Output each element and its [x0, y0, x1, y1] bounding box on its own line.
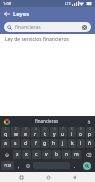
button[interactable]: Search — [83, 162, 91, 170]
staticText: m — [74, 151, 79, 158]
button[interactable]: 8 — [68, 127, 76, 137]
button[interactable]: Back — [68, 172, 80, 182]
staticText: r — [34, 131, 37, 137]
button[interactable]: g — [41, 139, 49, 148]
staticText: . — [74, 163, 76, 169]
staticText: w — [14, 131, 18, 137]
staticText: 8 — [71, 127, 73, 131]
staticText: financieras — [35, 118, 59, 124]
staticText: ñ — [88, 140, 92, 147]
button[interactable]: , — [15, 161, 23, 170]
button[interactable]: n — [62, 150, 71, 159]
staticText: t — [44, 131, 46, 137]
staticText: 9 — [80, 127, 82, 131]
staticText: z — [16, 151, 19, 158]
staticText: 1 — [5, 127, 7, 131]
button[interactable]: 1 — [1, 127, 10, 137]
staticText: v — [45, 151, 48, 158]
button[interactable]: x — [22, 150, 31, 159]
button[interactable]: Recents — [15, 172, 27, 182]
button[interactable]: Backspace — [82, 150, 94, 159]
button[interactable]: k — [68, 139, 76, 148]
staticText: Ley de servicios financieros — [5, 36, 69, 43]
staticText: 0 — [89, 127, 91, 131]
staticText: u — [61, 131, 65, 137]
staticText: o — [79, 131, 83, 137]
button[interactable]: Ley de servicios financieros — [0, 34, 95, 45]
staticText: Leyes — [13, 10, 30, 18]
staticText: 5 — [44, 127, 46, 131]
staticText: y — [53, 131, 56, 137]
staticText: i — [71, 131, 73, 137]
button[interactable]: Voice input — [85, 118, 92, 125]
staticText: ?123 — [4, 163, 12, 168]
button[interactable]: b — [52, 150, 61, 159]
button[interactable]: Home — [42, 172, 54, 182]
button[interactable]: ñ — [86, 139, 94, 148]
staticText: k — [71, 140, 74, 147]
button[interactable]: z — [13, 150, 21, 159]
button[interactable]: v — [42, 150, 51, 159]
button[interactable]: 5 — [41, 127, 49, 137]
staticText: 1:08 — [3, 1, 11, 6]
staticText: d — [24, 140, 28, 147]
button[interactable]: 3 — [21, 127, 30, 137]
staticText: a — [4, 140, 7, 147]
staticText: , — [18, 163, 20, 169]
button[interactable]: 9 — [77, 127, 85, 137]
staticText: h — [52, 140, 56, 147]
button[interactable]: Shift — [1, 150, 12, 159]
staticText: s — [14, 140, 17, 147]
button[interactable]: 6 — [50, 127, 58, 137]
button[interactable]: 4 — [31, 127, 40, 137]
staticText: g — [43, 140, 47, 147]
staticText: financieras — [15, 24, 81, 31]
button[interactable]: l — [77, 139, 85, 148]
staticText: l — [80, 140, 82, 147]
button[interactable]: Clear — [81, 24, 88, 31]
button[interactable]: Google — [3, 118, 10, 125]
button[interactable]: f — [31, 139, 40, 148]
button[interactable]: h — [50, 139, 58, 148]
button[interactable]: 0 — [86, 127, 94, 137]
button[interactable]: 7 — [59, 127, 67, 137]
staticText: 4 — [35, 127, 37, 131]
staticText: LTE — [65, 1, 71, 6]
staticText: 7 — [62, 127, 64, 131]
staticText: j — [62, 140, 64, 147]
button[interactable]: d — [21, 139, 30, 148]
staticText: 6 — [54, 127, 56, 131]
button[interactable]: 2 — [11, 127, 20, 137]
button[interactable]: m — [72, 150, 81, 159]
button[interactable]: ?123 — [1, 161, 14, 170]
button[interactable]: c — [32, 150, 41, 159]
button[interactable]: Back — [0, 7, 13, 20]
staticText: c — [35, 151, 38, 158]
button[interactable]: Emoji — [24, 161, 32, 170]
button[interactable]: s — [11, 139, 20, 148]
staticText: n — [65, 151, 69, 158]
staticText: e — [24, 131, 27, 137]
staticText: 3 — [25, 127, 27, 131]
staticText: x — [25, 151, 28, 158]
button[interactable]: . — [71, 161, 79, 170]
staticText: q — [4, 131, 8, 137]
button[interactable]: j — [59, 139, 67, 148]
staticText: 2 — [15, 127, 17, 131]
staticText: p — [88, 131, 92, 137]
button[interactable]: financieras — [4, 22, 91, 32]
staticText: f — [35, 140, 37, 147]
staticText: b — [55, 151, 59, 158]
button[interactable]: a — [1, 139, 10, 148]
